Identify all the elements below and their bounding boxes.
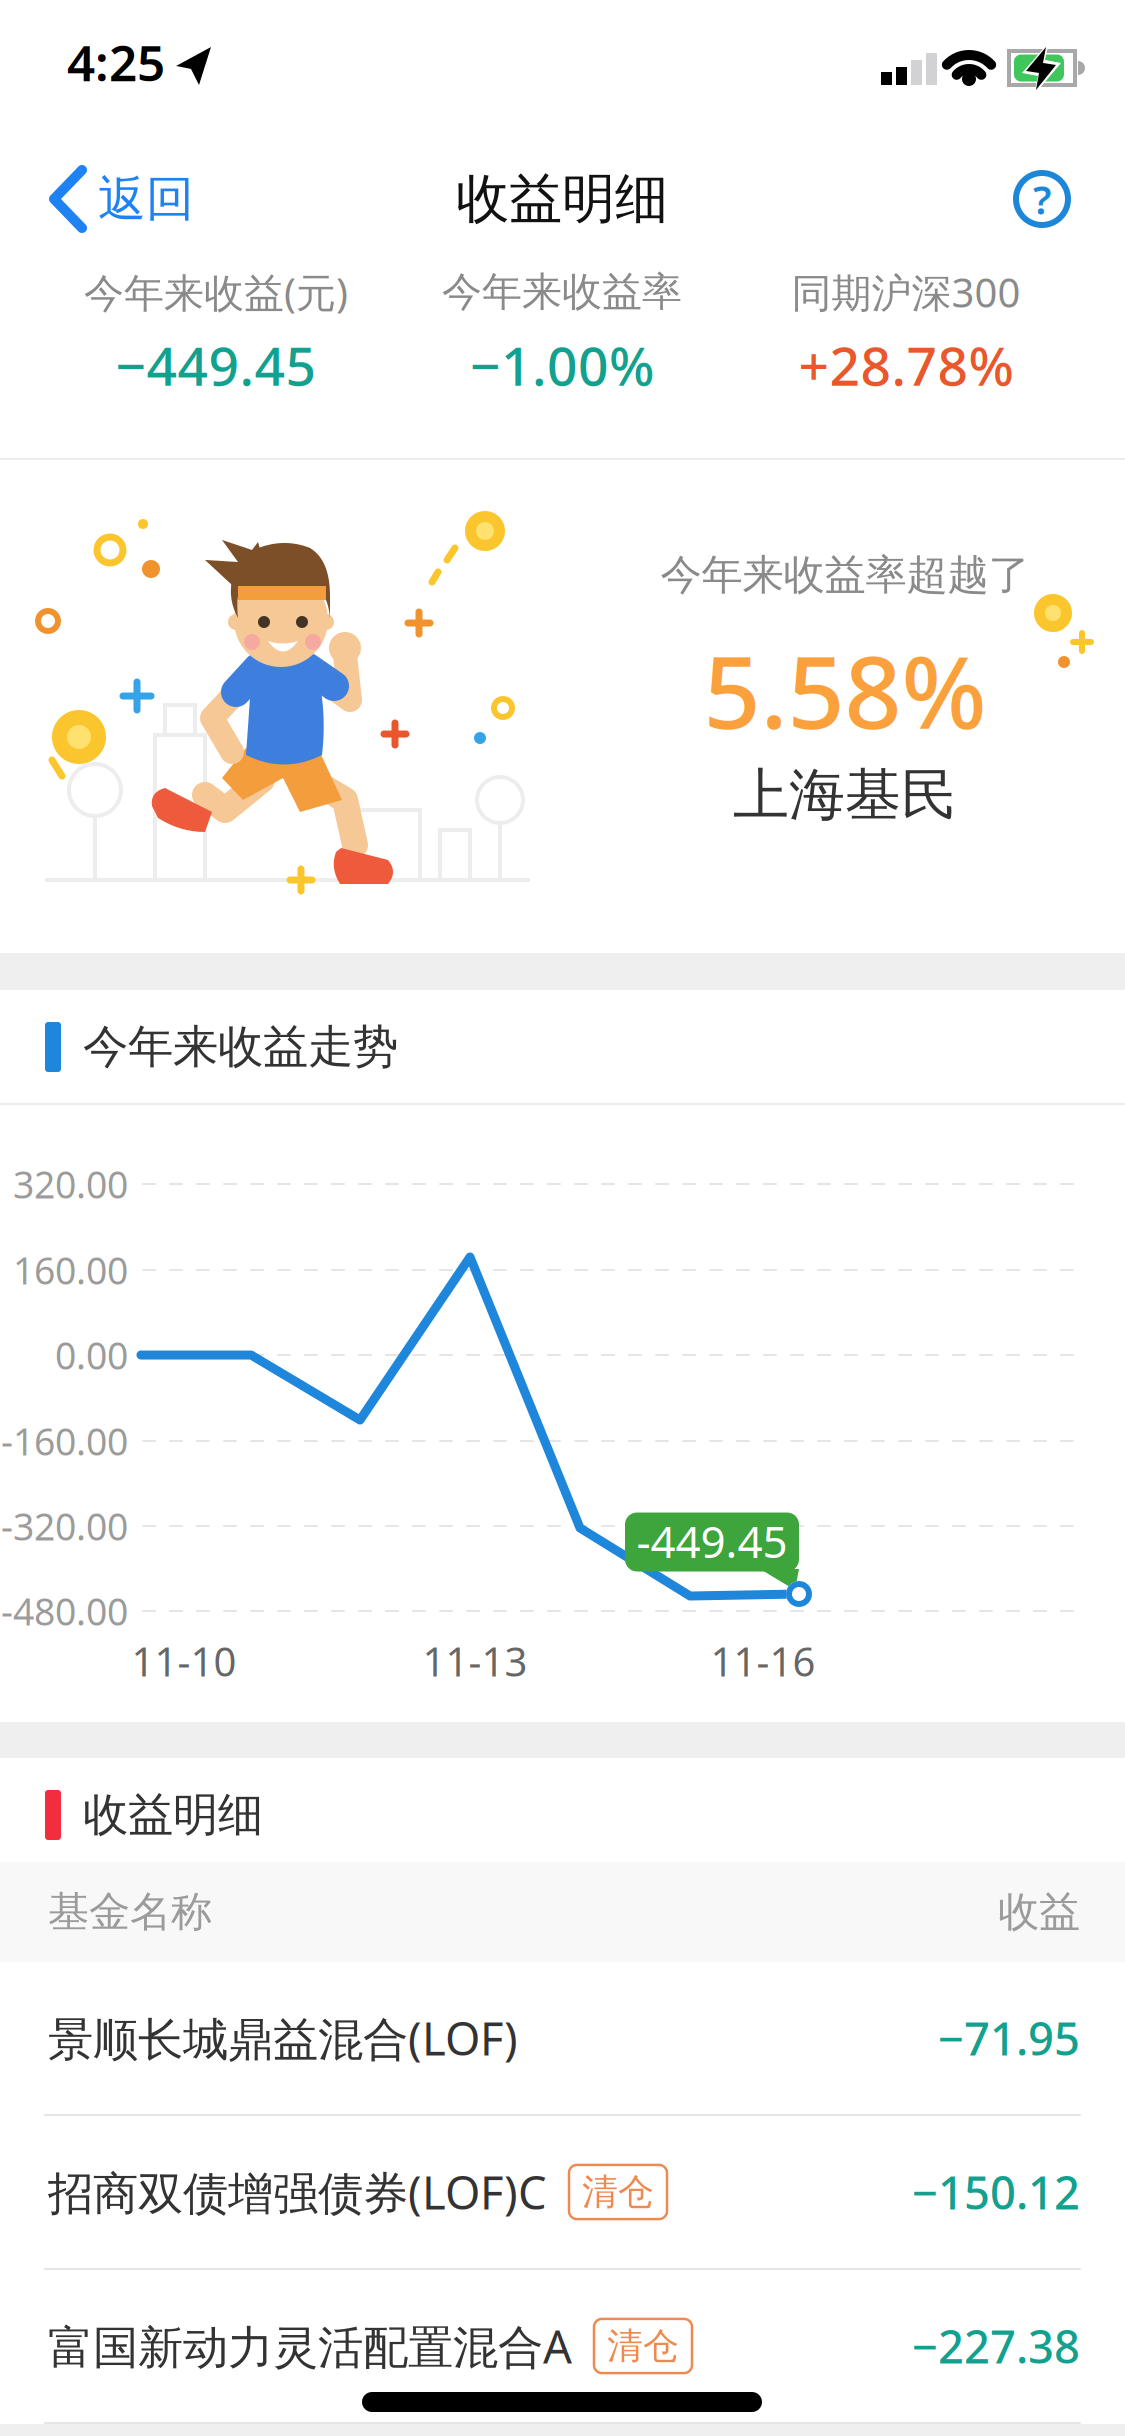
staticText: 同期沪深300 xyxy=(791,265,1020,318)
staticText: −227.38 xyxy=(912,2316,1080,2376)
staticText: 今年来收益(元) xyxy=(84,265,348,318)
staticText: 清仓 xyxy=(582,2170,654,2214)
staticText: 4:25 xyxy=(67,29,165,95)
staticText: 今年来收益走势 xyxy=(83,1019,398,1075)
staticText: -449.45 xyxy=(636,1512,787,1570)
staticText: 320.00 xyxy=(13,1159,128,1209)
staticText: 今年来收益率 xyxy=(442,267,682,316)
staticText: 160.00 xyxy=(13,1245,128,1295)
staticText: 清仓 xyxy=(607,2324,679,2368)
staticText: −71.95 xyxy=(938,2008,1080,2068)
staticText: 收益 xyxy=(998,1887,1080,1937)
staticText: 收益明细 xyxy=(456,166,668,232)
staticText: 基金名称 xyxy=(48,1887,212,1937)
staticText: 11-10 xyxy=(131,1634,236,1687)
staticText: 今年来收益率超越了 xyxy=(660,550,1029,600)
button[interactable]: 返回 xyxy=(0,100,220,260)
staticText: ? xyxy=(1033,172,1051,225)
button[interactable]: 招商双债增强债券(LOF)C xyxy=(0,2116,1125,2270)
staticText: 11-13 xyxy=(422,1634,527,1687)
staticText: +28.78% xyxy=(798,330,1013,400)
staticText: 11-16 xyxy=(710,1634,815,1687)
staticText: 5.58% xyxy=(703,624,986,756)
staticText: 景顺长城鼎益混合(LOF) xyxy=(48,2008,518,2068)
staticText: -480.00 xyxy=(1,1586,128,1636)
button[interactable]: 景顺长城鼎益混合(LOF) xyxy=(0,1962,1125,2116)
staticText: 返回 xyxy=(98,169,194,228)
staticText: -160.00 xyxy=(1,1416,128,1466)
staticText: 富国新动力灵活配置混合A xyxy=(48,2316,572,2376)
staticText: −449.45 xyxy=(115,330,316,400)
staticText: 收益明细 xyxy=(83,1787,263,1843)
staticText: -320.00 xyxy=(1,1501,128,1551)
button[interactable]: 帮助 xyxy=(997,154,1087,244)
staticText: −1.00% xyxy=(470,330,654,400)
button[interactable]: 富国新动力灵活配置混合A xyxy=(0,2270,1125,2424)
staticText: 上海基民 xyxy=(733,761,957,829)
staticText: 招商双债增强债券(LOF)C xyxy=(48,2162,547,2222)
staticText: −150.12 xyxy=(912,2162,1080,2222)
staticText: 0.00 xyxy=(55,1330,128,1380)
